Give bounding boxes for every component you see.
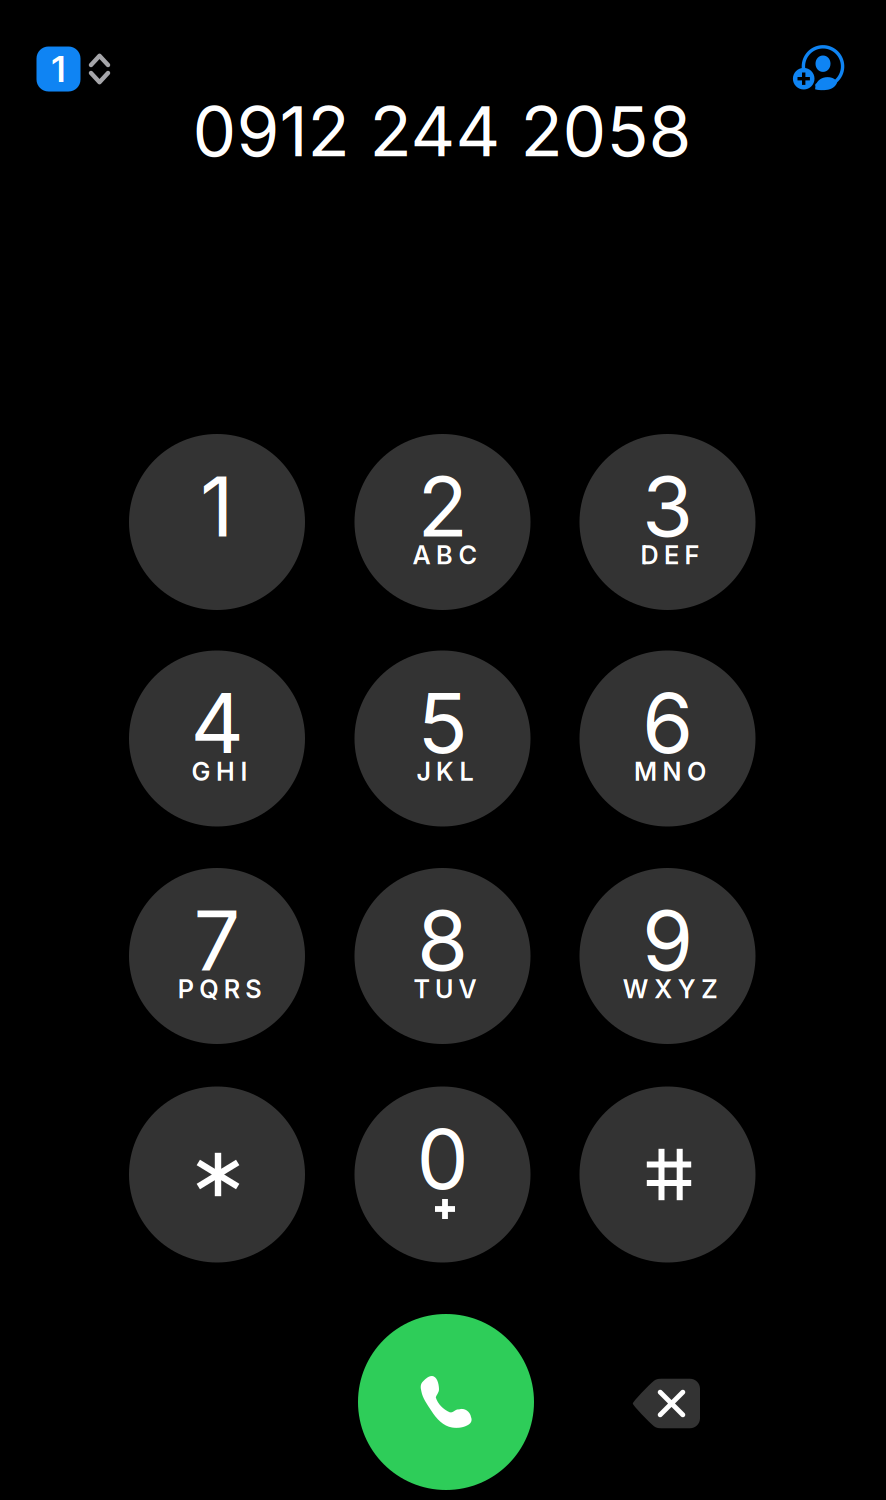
- button[interactable]: Add contact: [787, 39, 851, 97]
- staticText: 8: [417, 890, 468, 990]
- button[interactable]: Delete: [612, 1359, 720, 1448]
- staticText: 5: [417, 673, 467, 773]
- staticText: 3: [642, 456, 693, 556]
- button[interactable]: 1: [129, 434, 305, 610]
- button[interactable]: 0: [354, 1086, 530, 1262]
- staticText: 2: [417, 456, 467, 556]
- staticText: PQRS: [178, 974, 261, 1004]
- staticText: 9: [642, 890, 693, 990]
- button[interactable]: Call: [358, 1314, 534, 1490]
- button[interactable]: 5: [354, 650, 530, 826]
- staticText: DEF: [640, 540, 699, 570]
- staticText: 1: [51, 47, 65, 91]
- staticText: JKL: [416, 756, 473, 787]
- staticText: GHI: [191, 756, 247, 787]
- staticText: 0912 244 2058: [192, 89, 691, 173]
- button[interactable]: 9: [579, 868, 755, 1044]
- button[interactable]: Select SIM 1: [36, 46, 110, 91]
- button[interactable]: 3: [579, 434, 755, 610]
- staticText: 0: [416, 1109, 468, 1209]
- button[interactable]: 4: [129, 650, 305, 826]
- staticText: MNO: [634, 756, 706, 787]
- button[interactable]: 8: [354, 868, 530, 1044]
- staticText: ABC: [412, 540, 477, 570]
- button[interactable]: 7: [129, 868, 305, 1044]
- staticText: 7: [193, 890, 240, 990]
- button[interactable]: 2: [354, 434, 530, 610]
- button[interactable]: 6: [579, 650, 755, 826]
- button[interactable]: pound: [579, 1086, 755, 1262]
- staticText: TUV: [413, 974, 476, 1004]
- staticText: 4: [190, 673, 243, 773]
- staticText: 1: [200, 456, 234, 556]
- button[interactable]: star: [129, 1086, 305, 1262]
- staticText: 6: [642, 673, 693, 773]
- staticText: WXYZ: [623, 974, 717, 1004]
